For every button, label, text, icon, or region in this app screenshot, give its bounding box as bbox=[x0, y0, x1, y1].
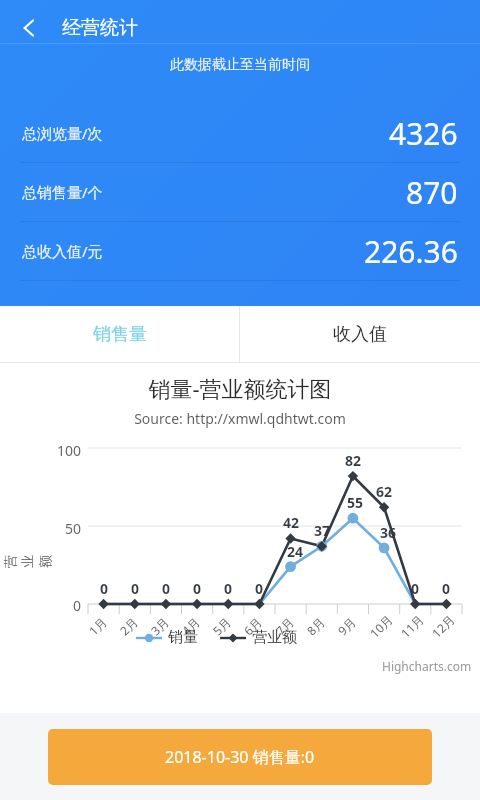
staticText: 0 bbox=[73, 596, 82, 615]
staticText: 0 bbox=[411, 579, 420, 597]
staticText: 226.36 bbox=[364, 231, 458, 272]
staticText: 销售量 bbox=[93, 323, 147, 346]
staticText: 销量 bbox=[168, 628, 198, 647]
button[interactable]: 总销售量/个 bbox=[0, 163, 480, 221]
staticText: 5月 bbox=[209, 614, 234, 638]
button[interactable]: 销售量 bbox=[0, 306, 239, 362]
staticText: 4月 bbox=[178, 614, 203, 638]
staticText: 0 bbox=[193, 579, 202, 597]
staticText: 1月 bbox=[85, 614, 110, 638]
staticText: 24 bbox=[287, 542, 304, 560]
button[interactable]: Back bbox=[6, 5, 52, 51]
staticText: 50 bbox=[65, 519, 82, 538]
staticText: 11月 bbox=[397, 611, 427, 641]
staticText: 3月 bbox=[147, 614, 172, 638]
button[interactable]: 总收入值/元 bbox=[0, 222, 480, 280]
staticText: 总收入值/元 bbox=[22, 241, 103, 261]
staticText: 收入值 bbox=[333, 323, 387, 346]
staticText: 6月 bbox=[240, 614, 265, 638]
staticText: 2018-10-30 销售量:0 bbox=[165, 746, 315, 768]
staticText: 0 bbox=[255, 579, 264, 597]
staticText: 总销售量/个 bbox=[22, 182, 103, 202]
staticText: 总浏览量/次 bbox=[22, 123, 103, 143]
staticText: 7月 bbox=[272, 614, 297, 638]
button[interactable]: 2018-10-30 销售量:0 bbox=[48, 729, 432, 785]
staticText: 营业额 bbox=[252, 628, 297, 647]
staticText: 870 bbox=[406, 172, 458, 213]
staticText: 82 bbox=[345, 451, 362, 469]
staticText: 8月 bbox=[303, 614, 328, 638]
staticText: 55 bbox=[347, 493, 364, 511]
staticText: 4326 bbox=[389, 113, 458, 154]
staticText: 62 bbox=[376, 482, 393, 500]
staticText: 经营统计 bbox=[62, 16, 138, 40]
staticText: Source: http://xmwl.qdhtwt.com bbox=[0, 409, 480, 428]
staticText: 销量-营业额统计图 bbox=[0, 373, 480, 403]
staticText: 营业额 bbox=[2, 548, 54, 568]
staticText: 0 bbox=[100, 579, 109, 597]
staticText: 12月 bbox=[428, 611, 458, 641]
staticText: 0 bbox=[224, 579, 233, 597]
staticText: 37 bbox=[314, 521, 331, 539]
staticText: 36 bbox=[380, 523, 397, 541]
staticText: Highcharts.com bbox=[382, 658, 472, 674]
staticText: 0 bbox=[162, 579, 171, 597]
staticText: 0 bbox=[131, 579, 140, 597]
staticText: 42 bbox=[283, 513, 300, 531]
button[interactable]: 收入值 bbox=[240, 306, 480, 362]
staticText: 0 bbox=[442, 579, 451, 597]
button[interactable]: 总浏览量/次 bbox=[0, 104, 480, 162]
staticText: 2月 bbox=[116, 614, 141, 638]
staticText: 100 bbox=[57, 441, 82, 460]
staticText: 10月 bbox=[366, 611, 396, 641]
staticText: 此数据截止至当前时间 bbox=[0, 56, 480, 74]
staticText: 9月 bbox=[334, 614, 359, 638]
